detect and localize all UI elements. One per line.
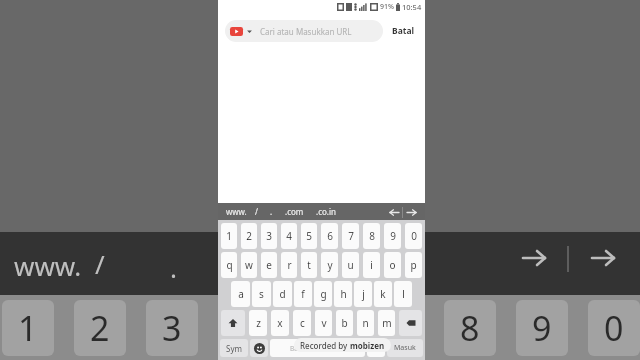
staticText: q	[226, 258, 233, 272]
button[interactable]: Period	[367, 339, 385, 357]
staticText: o	[389, 258, 396, 272]
button[interactable]: Masuk	[387, 339, 423, 357]
button[interactable]: q	[221, 252, 237, 278]
staticText: g	[320, 287, 327, 301]
button[interactable]: z	[249, 310, 267, 336]
button[interactable]: r	[281, 252, 297, 278]
button[interactable]: i	[363, 252, 380, 278]
button[interactable]: Next suggestion	[403, 204, 419, 220]
button[interactable]: a	[231, 281, 250, 307]
button[interactable]: e	[261, 252, 277, 278]
button[interactable]: 3	[261, 223, 277, 249]
staticText: 10:54	[402, 2, 422, 12]
staticText: y	[327, 258, 333, 272]
button[interactable]: 8	[363, 223, 380, 249]
staticText: s	[259, 287, 264, 301]
button[interactable]: d	[273, 281, 292, 307]
staticText: Sym	[226, 343, 242, 354]
button[interactable]: .com	[279, 204, 310, 219]
button[interactable]: 4	[281, 223, 297, 249]
staticText: /	[95, 246, 105, 281]
button[interactable]: s	[252, 281, 271, 307]
button[interactable]: 2	[241, 223, 257, 249]
button[interactable]: .co.in	[310, 204, 342, 219]
staticText: 9	[532, 305, 552, 351]
button[interactable]: 7	[342, 223, 359, 249]
button[interactable]: 9	[384, 223, 401, 249]
staticText: www.	[14, 248, 82, 283]
button[interactable]: y	[321, 252, 338, 278]
staticText: 91%	[380, 2, 394, 12]
button[interactable]: h	[334, 281, 352, 307]
button[interactable]: g	[314, 281, 332, 307]
button[interactable]: www.	[224, 204, 249, 219]
button[interactable]: u	[342, 252, 359, 278]
staticText: www.	[226, 206, 247, 217]
button[interactable]: Shift	[221, 310, 245, 336]
button[interactable]: 0	[405, 223, 422, 249]
button[interactable]: p	[405, 252, 422, 278]
button[interactable]: Previous suggestion	[386, 204, 402, 220]
button[interactable]: 6	[321, 223, 338, 249]
button[interactable]: f	[294, 281, 312, 307]
button[interactable]: k	[374, 281, 392, 307]
button[interactable]: Sym	[220, 339, 248, 357]
staticText: f	[301, 287, 305, 301]
button[interactable]: Bahasa Indonesia	[270, 339, 365, 357]
staticText: a	[238, 287, 244, 301]
button[interactable]: .	[264, 204, 279, 219]
button[interactable]: n	[357, 310, 374, 336]
button[interactable]: l	[394, 281, 412, 307]
staticText: v	[321, 316, 327, 330]
staticText: 2	[246, 229, 252, 243]
button[interactable]: c	[293, 310, 311, 336]
staticText: 1	[226, 229, 232, 243]
staticText: Bahasa Indonesia	[290, 344, 345, 353]
button[interactable]: 1	[221, 223, 237, 249]
staticText: mobizen	[350, 340, 385, 351]
staticText: 9	[390, 229, 396, 243]
staticText: 6	[327, 229, 333, 243]
staticText: 0	[604, 305, 624, 351]
staticText: k	[380, 287, 386, 301]
button[interactable]: Batal	[389, 21, 418, 41]
button[interactable]: Cari atau Masukkan URL	[225, 20, 383, 42]
staticText: b	[341, 316, 348, 330]
staticText: 1	[18, 305, 38, 351]
staticText: .com	[285, 206, 304, 217]
button[interactable]: v	[315, 310, 332, 336]
staticText: w	[245, 258, 253, 272]
staticText: Batal	[392, 25, 415, 37]
button[interactable]: b	[336, 310, 353, 336]
staticText: 8	[460, 305, 480, 351]
button[interactable]: Backspace	[399, 310, 422, 336]
staticText: d	[279, 287, 286, 301]
staticText: u	[347, 258, 354, 272]
staticText: .	[270, 206, 273, 217]
button[interactable]: x	[271, 310, 289, 336]
button[interactable]: j	[354, 281, 372, 307]
staticText: Masuk	[394, 343, 416, 353]
staticText: Cari atau Masukkan URL	[260, 26, 352, 37]
button[interactable]: /	[249, 204, 264, 219]
staticText: 0	[411, 229, 417, 243]
staticText: l	[402, 287, 405, 301]
staticText: Recorded by	[300, 340, 350, 351]
staticText: m	[382, 316, 392, 330]
button[interactable]: w	[241, 252, 257, 278]
staticText: p	[410, 258, 417, 272]
staticText: z	[256, 316, 261, 330]
staticText: .	[170, 250, 177, 285]
staticText: .	[375, 342, 378, 354]
staticText: i	[370, 258, 373, 272]
button[interactable]: Emoji	[250, 339, 268, 357]
staticText: /	[255, 206, 258, 217]
staticText: 3	[162, 305, 182, 351]
staticText: t	[307, 258, 311, 272]
button[interactable]: m	[378, 310, 395, 336]
staticText: e	[266, 258, 272, 272]
staticText: c	[300, 316, 305, 330]
button[interactable]: o	[384, 252, 401, 278]
button[interactable]: t	[301, 252, 317, 278]
button[interactable]: 5	[301, 223, 317, 249]
